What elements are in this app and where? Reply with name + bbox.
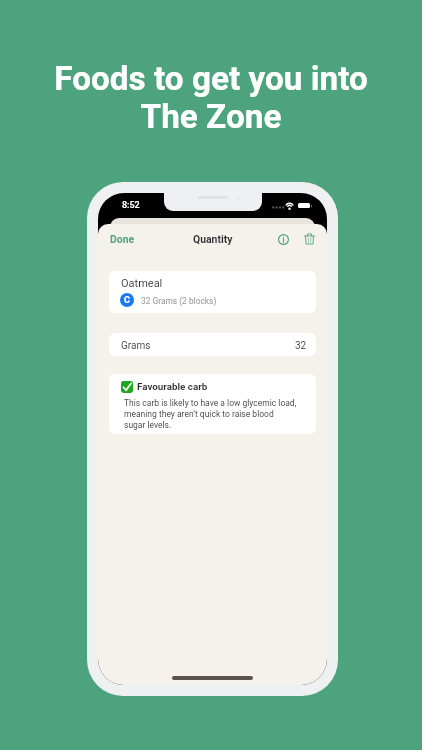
staticText: 8:52 bbox=[122, 200, 140, 211]
staticText: Oatmeal bbox=[121, 277, 163, 290]
staticText: 32 bbox=[295, 340, 307, 352]
staticText: Done bbox=[110, 233, 135, 245]
staticText: Favourable carb bbox=[137, 381, 208, 392]
button[interactable]: Done bbox=[104, 228, 141, 250]
button[interactable]: Grams bbox=[109, 333, 316, 356]
button[interactable]: Delete bbox=[300, 230, 318, 248]
staticText: 32 Grams (2 blocks) bbox=[141, 296, 217, 306]
staticText: C bbox=[124, 295, 130, 306]
staticText: Quantity bbox=[193, 233, 233, 245]
staticText: This carb is likely to have a low glycem… bbox=[124, 398, 297, 430]
button[interactable]: Oatmeal bbox=[109, 271, 316, 313]
staticText: Foods to get you into The Zone bbox=[0, 59, 422, 137]
staticText: Grams bbox=[121, 340, 151, 352]
button[interactable]: Information bbox=[274, 230, 292, 248]
